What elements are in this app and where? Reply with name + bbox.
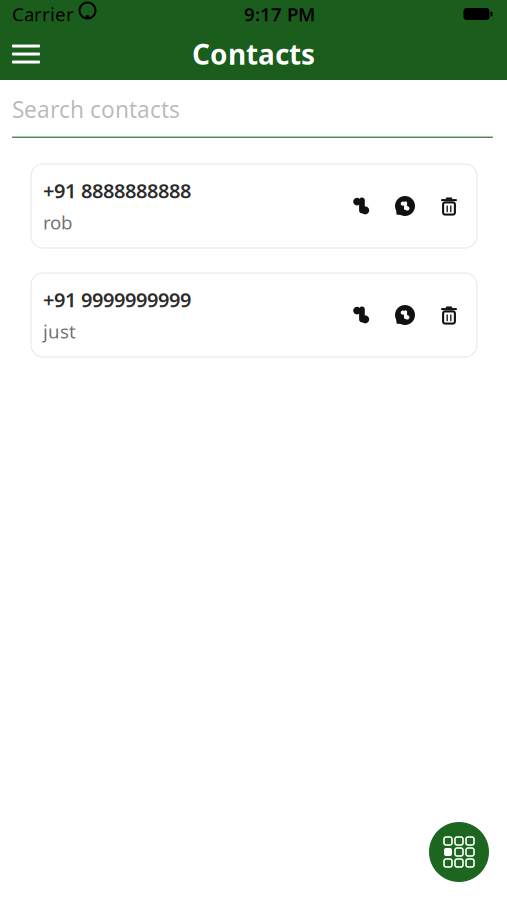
button[interactable]: Menu	[0, 28, 52, 80]
staticText: +91 8888888888	[43, 177, 191, 204]
staticText: Search contacts	[12, 94, 180, 124]
button[interactable]: Delete	[427, 293, 471, 337]
staticText: 9:17 PM	[244, 2, 315, 26]
button[interactable]: Call	[339, 184, 383, 228]
staticText: rob	[43, 210, 72, 235]
button[interactable]: +91 9999999999	[31, 273, 477, 357]
staticText: Contacts	[192, 35, 315, 73]
staticText: just	[43, 319, 76, 344]
button[interactable]: Dialpad	[429, 822, 489, 882]
button[interactable]: Delete	[427, 184, 471, 228]
button[interactable]: WhatsApp	[383, 184, 427, 228]
button[interactable]: +91 8888888888	[31, 164, 477, 248]
button[interactable]: Search contacts	[0, 82, 507, 138]
button[interactable]: Call	[339, 293, 383, 337]
button[interactable]: WhatsApp	[383, 293, 427, 337]
staticText: Carrier	[12, 2, 74, 26]
staticText: +91 9999999999	[43, 286, 191, 313]
